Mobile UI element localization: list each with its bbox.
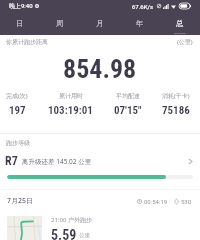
staticText: 00:54:19 bbox=[144, 198, 168, 205]
staticText: R7 bbox=[5, 154, 18, 168]
button[interactable]: 21:00 户外跑步 bbox=[0, 216, 200, 240]
staticText: 累计用时 bbox=[59, 92, 83, 100]
staticText: 消耗(千卡) bbox=[162, 92, 190, 100]
staticText: 你累计跑步距离 bbox=[6, 38, 48, 46]
staticText: 年 bbox=[136, 19, 144, 28]
staticText: 07'15" bbox=[114, 104, 142, 117]
staticText: 日 bbox=[16, 19, 24, 28]
staticText: 总 bbox=[176, 19, 184, 28]
staticText: 5.59 bbox=[51, 227, 77, 240]
button[interactable]: 月 bbox=[80, 12, 120, 35]
staticText: 跑步等级 bbox=[6, 139, 30, 147]
staticText: 530 bbox=[181, 198, 192, 205]
staticText: 公里 bbox=[79, 232, 90, 239]
staticText: 月 bbox=[96, 19, 104, 28]
button[interactable]: 年 bbox=[120, 12, 160, 35]
button[interactable]: R7 bbox=[0, 154, 200, 168]
staticText: (公里) bbox=[177, 38, 193, 46]
staticText: 完成(次) bbox=[6, 92, 28, 100]
staticText: 197 bbox=[9, 104, 26, 117]
button[interactable]: 日 bbox=[0, 12, 40, 35]
staticText: 103:19:01 bbox=[48, 104, 93, 117]
staticText: 67.6K/s bbox=[132, 3, 154, 10]
staticText: 平均配速 bbox=[116, 92, 140, 100]
staticText: 7月25日 bbox=[7, 196, 34, 206]
button[interactable]: 周 bbox=[40, 12, 80, 35]
staticText: 75186 bbox=[162, 104, 190, 117]
staticText: 21:00 户外跑步 bbox=[51, 216, 92, 224]
staticText: 854.98 bbox=[63, 54, 137, 84]
button[interactable]: 总 bbox=[160, 12, 200, 35]
staticText: 晚上9:40 bbox=[9, 2, 33, 10]
staticText: 周 bbox=[56, 19, 64, 28]
staticText: 离升级还差 145.02 公里 bbox=[22, 157, 92, 166]
